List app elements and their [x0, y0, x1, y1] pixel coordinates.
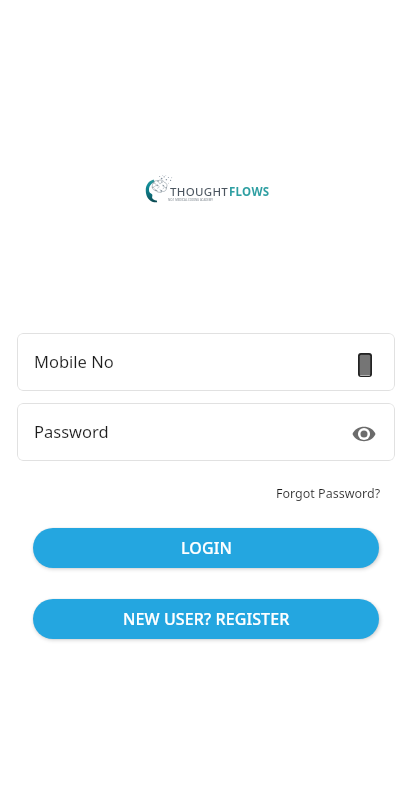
staticText: NO.1 MEDICAL CODING ACADEMY: [168, 198, 213, 202]
staticText: Mobile No: [34, 350, 114, 372]
button[interactable]: Mobile number: [350, 350, 380, 380]
button[interactable]: Password: [17, 403, 395, 461]
button[interactable]: NEW USER? REGISTER: [33, 599, 379, 639]
staticText: LOGIN: [181, 537, 232, 559]
staticText: FLOWS: [229, 184, 270, 200]
button[interactable]: Forgot Password?: [271, 482, 386, 505]
button[interactable]: Show password: [349, 419, 379, 449]
staticText: NEW USER? REGISTER: [123, 608, 290, 630]
staticText: THOUGHT: [170, 184, 229, 200]
staticText: Forgot Password?: [276, 485, 381, 502]
button[interactable]: Mobile No: [17, 333, 395, 391]
staticText: Password: [34, 420, 109, 442]
button[interactable]: LOGIN: [33, 528, 379, 568]
